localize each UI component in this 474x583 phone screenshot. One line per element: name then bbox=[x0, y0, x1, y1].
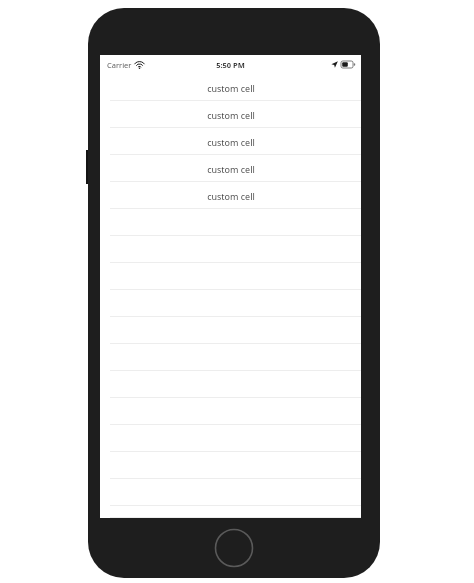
button[interactable] bbox=[100, 398, 361, 425]
staticText: custom cell bbox=[207, 136, 255, 148]
button[interactable]: custom cell bbox=[100, 155, 361, 182]
staticText: custom cell bbox=[207, 109, 255, 121]
staticText: custom cell bbox=[207, 190, 255, 202]
button[interactable] bbox=[100, 506, 361, 518]
staticText: 5:50 PM bbox=[216, 60, 245, 70]
button[interactable] bbox=[100, 263, 361, 290]
staticText: custom cell bbox=[207, 163, 255, 175]
button[interactable]: custom cell bbox=[100, 182, 361, 209]
button[interactable]: Home bbox=[214, 528, 254, 568]
button[interactable] bbox=[100, 479, 361, 506]
button[interactable] bbox=[100, 290, 361, 317]
staticText: Carrier bbox=[107, 60, 132, 70]
button[interactable] bbox=[100, 236, 361, 263]
button[interactable] bbox=[100, 452, 361, 479]
button[interactable]: custom cell bbox=[100, 74, 361, 101]
staticText: custom cell bbox=[207, 82, 255, 94]
button[interactable] bbox=[100, 344, 361, 371]
button[interactable] bbox=[100, 209, 361, 236]
button[interactable] bbox=[100, 317, 361, 344]
button[interactable] bbox=[100, 371, 361, 398]
button[interactable] bbox=[100, 425, 361, 452]
button[interactable]: custom cell bbox=[100, 128, 361, 155]
button[interactable]: custom cell bbox=[100, 101, 361, 128]
